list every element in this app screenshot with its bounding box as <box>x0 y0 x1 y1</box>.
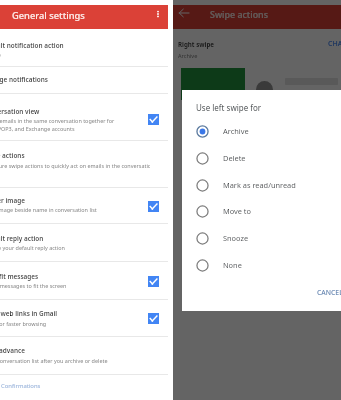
button[interactable]: Archive <box>182 118 341 144</box>
staticText: Open for faster browsing <box>0 320 47 327</box>
staticText: Mark as read/unread <box>223 180 296 190</box>
button[interactable]: Toggle setting <box>148 313 159 324</box>
staticText: Move to <box>223 206 252 216</box>
button[interactable]: More options <box>150 6 166 22</box>
button[interactable]: CANCEL <box>317 288 341 297</box>
button[interactable]: Auto-advance <box>0 337 168 375</box>
staticText: Conversation view <box>0 107 40 116</box>
staticText: Archive <box>0 51 1 58</box>
button[interactable]: Open web links in Gmail <box>0 300 168 337</box>
staticText: Default notification action <box>0 41 64 50</box>
staticText: Sender image <box>0 196 25 205</box>
button[interactable]: Default notification action <box>0 29 168 67</box>
button[interactable]: Back <box>176 5 192 21</box>
staticText: Configure swipe actions to quickly act o… <box>0 162 150 169</box>
staticText: IMAP, POP3, and Exchange accounts <box>0 125 75 132</box>
staticText: Swipe actions <box>210 8 268 20</box>
staticText: Delete <box>223 153 246 163</box>
staticText: Open web links in Gmail <box>0 309 58 318</box>
button[interactable]: Toggle setting <box>148 201 159 212</box>
staticText: Archive <box>178 52 198 60</box>
button[interactable]: Conversation view <box>0 94 168 141</box>
button[interactable]: Manage notifications <box>0 67 168 94</box>
staticText: Auto-advance <box>0 346 25 355</box>
button[interactable]: Auto-fit messages <box>0 262 168 300</box>
staticText: Archive <box>223 126 249 136</box>
button[interactable]: Swipe actions <box>0 141 168 188</box>
staticText: None <box>223 260 242 270</box>
staticText: Group emails in the same conversation to… <box>0 117 115 124</box>
staticText: Auto-fit messages <box>0 272 39 281</box>
staticText: Choose your default reply action <box>0 244 65 251</box>
staticText: Snooze <box>223 233 249 243</box>
button[interactable]: Sender image <box>0 188 168 224</box>
button[interactable]: Move to <box>182 198 341 224</box>
button[interactable]: Mark as read/unread <box>182 172 341 198</box>
button[interactable]: Snooze <box>182 225 341 251</box>
staticText: Show conversation list after you archive… <box>0 357 108 364</box>
button[interactable]: None <box>182 252 341 278</box>
staticText: Action Confirmations <box>0 382 41 390</box>
staticText: Show image beside name in conversation l… <box>0 206 97 213</box>
staticText: CANCEL <box>317 288 341 297</box>
button[interactable]: Delete <box>182 145 341 171</box>
button[interactable]: Default reply action <box>0 224 168 262</box>
staticText: Manage notifications <box>0 75 49 84</box>
staticText: CHANGE <box>328 39 341 49</box>
staticText: Swipe actions <box>0 151 25 160</box>
button[interactable]: Action Confirmations <box>0 375 168 400</box>
staticText: Shrink messages to fit the screen <box>0 282 67 289</box>
staticText: Default reply action <box>0 234 44 243</box>
staticText: Right swipe <box>178 40 214 48</box>
button[interactable]: Toggle setting <box>148 114 159 125</box>
staticText: General settings <box>12 9 85 22</box>
staticText: Use left swipe for <box>196 102 262 113</box>
button[interactable]: Toggle setting <box>148 276 159 287</box>
